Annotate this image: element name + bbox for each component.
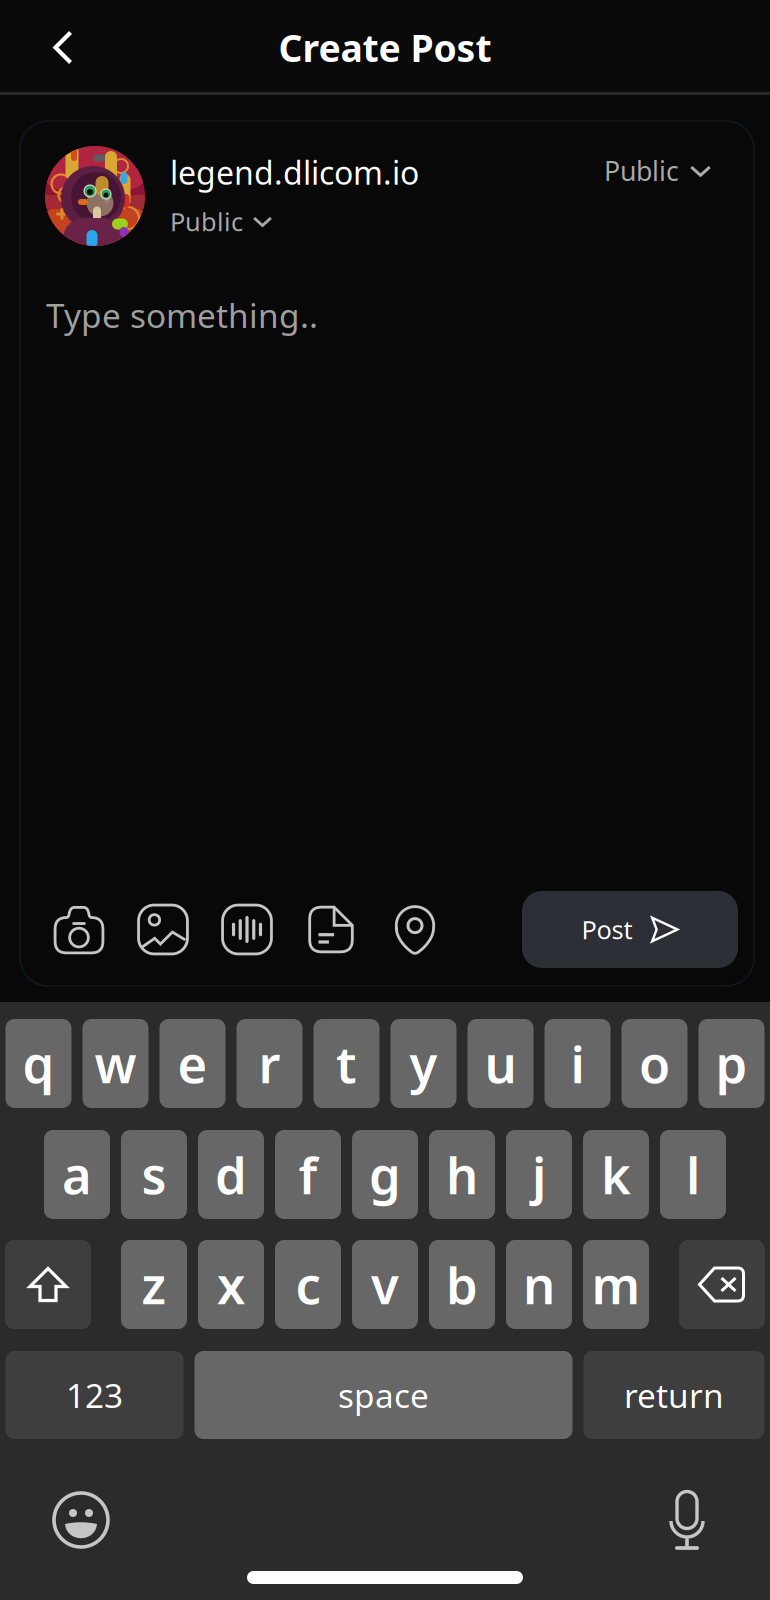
staticText: o: [639, 1030, 670, 1097]
staticText: u: [484, 1030, 516, 1097]
staticText: e: [177, 1030, 207, 1097]
button[interactable]: t: [313, 1019, 379, 1108]
button[interactable]: y: [390, 1019, 456, 1108]
staticText: x: [217, 1251, 245, 1318]
staticText: p: [715, 1030, 747, 1097]
button[interactable]: e: [159, 1019, 225, 1108]
button[interactable]: Shift: [5, 1240, 91, 1329]
button[interactable]: Public: [170, 204, 273, 238]
button[interactable]: Delete: [679, 1240, 765, 1329]
staticText: j: [532, 1141, 546, 1208]
button[interactable]: a: [44, 1130, 110, 1219]
button[interactable]: h: [429, 1130, 495, 1219]
button[interactable]: x: [198, 1240, 264, 1329]
staticText: d: [215, 1141, 247, 1208]
button[interactable]: w: [82, 1019, 148, 1108]
staticText: return: [624, 1373, 724, 1417]
button[interactable]: 123: [5, 1351, 183, 1439]
button[interactable]: Back: [32, 16, 94, 78]
button[interactable]: g: [352, 1130, 418, 1219]
staticText: z: [141, 1251, 166, 1318]
button[interactable]: Audio: [210, 892, 284, 966]
button[interactable]: return: [583, 1351, 764, 1439]
button[interactable]: p: [698, 1019, 764, 1108]
button[interactable]: Dictation: [652, 1485, 722, 1555]
button[interactable]: i: [544, 1019, 610, 1108]
staticText: a: [62, 1141, 92, 1208]
staticText: t: [336, 1030, 357, 1097]
staticText: w: [94, 1030, 136, 1097]
button[interactable]: Photo: [126, 892, 200, 966]
staticText: Public: [170, 204, 243, 238]
button[interactable]: m: [583, 1240, 649, 1329]
button[interactable]: space: [194, 1351, 572, 1439]
staticText: i: [570, 1030, 584, 1097]
button[interactable]: f: [275, 1130, 341, 1219]
button[interactable]: v: [352, 1240, 418, 1329]
staticText: l: [686, 1141, 700, 1208]
staticText: 123: [66, 1373, 123, 1417]
staticText: s: [141, 1141, 166, 1208]
staticText: k: [601, 1141, 631, 1208]
staticText: r: [258, 1030, 280, 1097]
staticText: f: [298, 1141, 317, 1208]
button[interactable]: z: [121, 1240, 187, 1329]
staticText: c: [295, 1251, 320, 1318]
button[interactable]: Location: [378, 892, 452, 966]
staticText: Public: [604, 153, 679, 188]
button[interactable]: s: [121, 1130, 187, 1219]
button[interactable]: l: [660, 1130, 726, 1219]
button[interactable]: c: [275, 1240, 341, 1329]
staticText: v: [371, 1251, 399, 1318]
button[interactable]: Emoji: [46, 1485, 116, 1555]
button[interactable]: d: [198, 1130, 264, 1219]
staticText: n: [523, 1251, 555, 1318]
button[interactable]: n: [506, 1240, 572, 1329]
staticText: Create Post: [278, 23, 491, 72]
staticText: legend.dlicom.io: [170, 151, 419, 193]
staticText: g: [369, 1141, 401, 1208]
button[interactable]: j: [506, 1130, 572, 1219]
staticText: q: [22, 1030, 54, 1097]
staticText: y: [409, 1030, 437, 1097]
button[interactable]: u: [467, 1019, 533, 1108]
button[interactable]: o: [621, 1019, 687, 1108]
button[interactable]: Document: [294, 892, 368, 966]
staticText: b: [446, 1251, 478, 1318]
staticText: Type something..: [46, 293, 318, 337]
button[interactable]: Post: [522, 891, 738, 968]
staticText: Post: [581, 913, 632, 946]
button[interactable]: Public: [604, 153, 712, 188]
staticText: h: [446, 1141, 478, 1208]
button[interactable]: q: [5, 1019, 71, 1108]
button[interactable]: b: [429, 1240, 495, 1329]
button[interactable]: r: [236, 1019, 302, 1108]
button[interactable]: Camera: [42, 892, 116, 966]
button[interactable]: k: [583, 1130, 649, 1219]
staticText: space: [338, 1373, 429, 1417]
staticText: m: [591, 1251, 640, 1318]
